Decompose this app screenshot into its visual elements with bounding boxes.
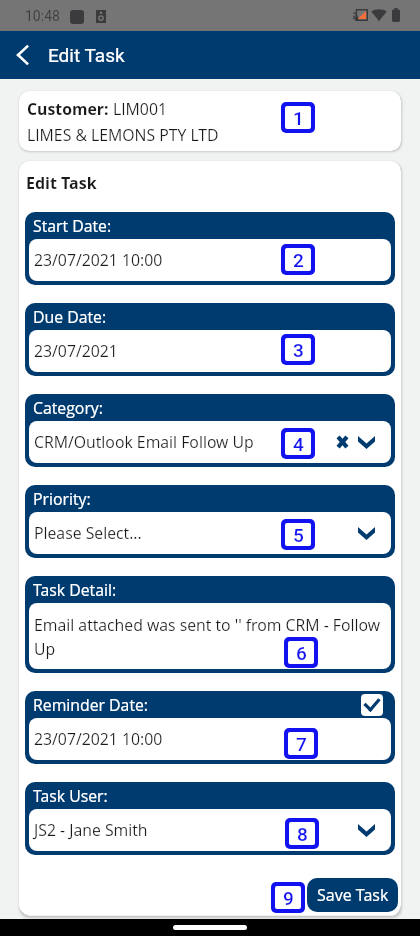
staticText: JS2 - Jane Smith <box>34 819 358 841</box>
button[interactable]: Reminder Date: <box>25 691 395 764</box>
staticText: Due Date: <box>33 306 107 328</box>
staticText: 4 <box>293 433 304 455</box>
staticText: Edit Task <box>26 172 97 194</box>
staticText: 2 <box>293 249 304 271</box>
staticText: 1 <box>293 107 304 129</box>
staticText: 7 <box>296 733 307 755</box>
staticText: LIMES & LEMONS PTY LTD <box>27 124 219 146</box>
staticText: LIM001 <box>113 98 167 120</box>
button[interactable]: Save Task <box>307 878 398 912</box>
button[interactable]: Reminder enabled <box>361 694 383 716</box>
button[interactable]: Priority: <box>25 485 395 558</box>
staticText: Start Date: <box>33 215 112 237</box>
button[interactable]: Back <box>4 37 40 73</box>
staticText: 10:48 <box>25 8 60 24</box>
staticText: Edit Task <box>48 44 125 66</box>
button[interactable]: Task Detail: <box>25 576 395 673</box>
staticText: 8 <box>297 823 308 845</box>
staticText: CRM/Outlook Email Follow Up <box>34 431 336 453</box>
staticText: Priority: <box>33 488 91 510</box>
staticText: Email attached was sent to '' from CRM -… <box>34 614 385 659</box>
staticText: 9 <box>283 887 294 909</box>
staticText: Save Task <box>317 884 389 906</box>
staticText: Category: <box>33 397 103 419</box>
staticText: 6 <box>296 642 307 664</box>
button[interactable]: Category: <box>25 394 395 467</box>
staticText: 23/07/2021 10:00 <box>34 249 385 271</box>
staticText: 23/07/2021 10:00 <box>34 728 385 750</box>
staticText: Task Detail: <box>33 579 117 601</box>
button[interactable]: Task User: <box>25 782 395 855</box>
staticText: 5 <box>293 524 304 546</box>
staticText: Reminder Date: <box>33 694 149 716</box>
button[interactable]: Start Date: <box>25 212 395 285</box>
staticText: Please Select... <box>34 522 358 544</box>
staticText: 3 <box>293 339 304 361</box>
staticText: 23/07/2021 <box>34 340 385 362</box>
button[interactable]: Due Date: <box>25 303 395 376</box>
staticText: Task User: <box>33 785 108 807</box>
staticText: Customer: <box>27 98 113 120</box>
